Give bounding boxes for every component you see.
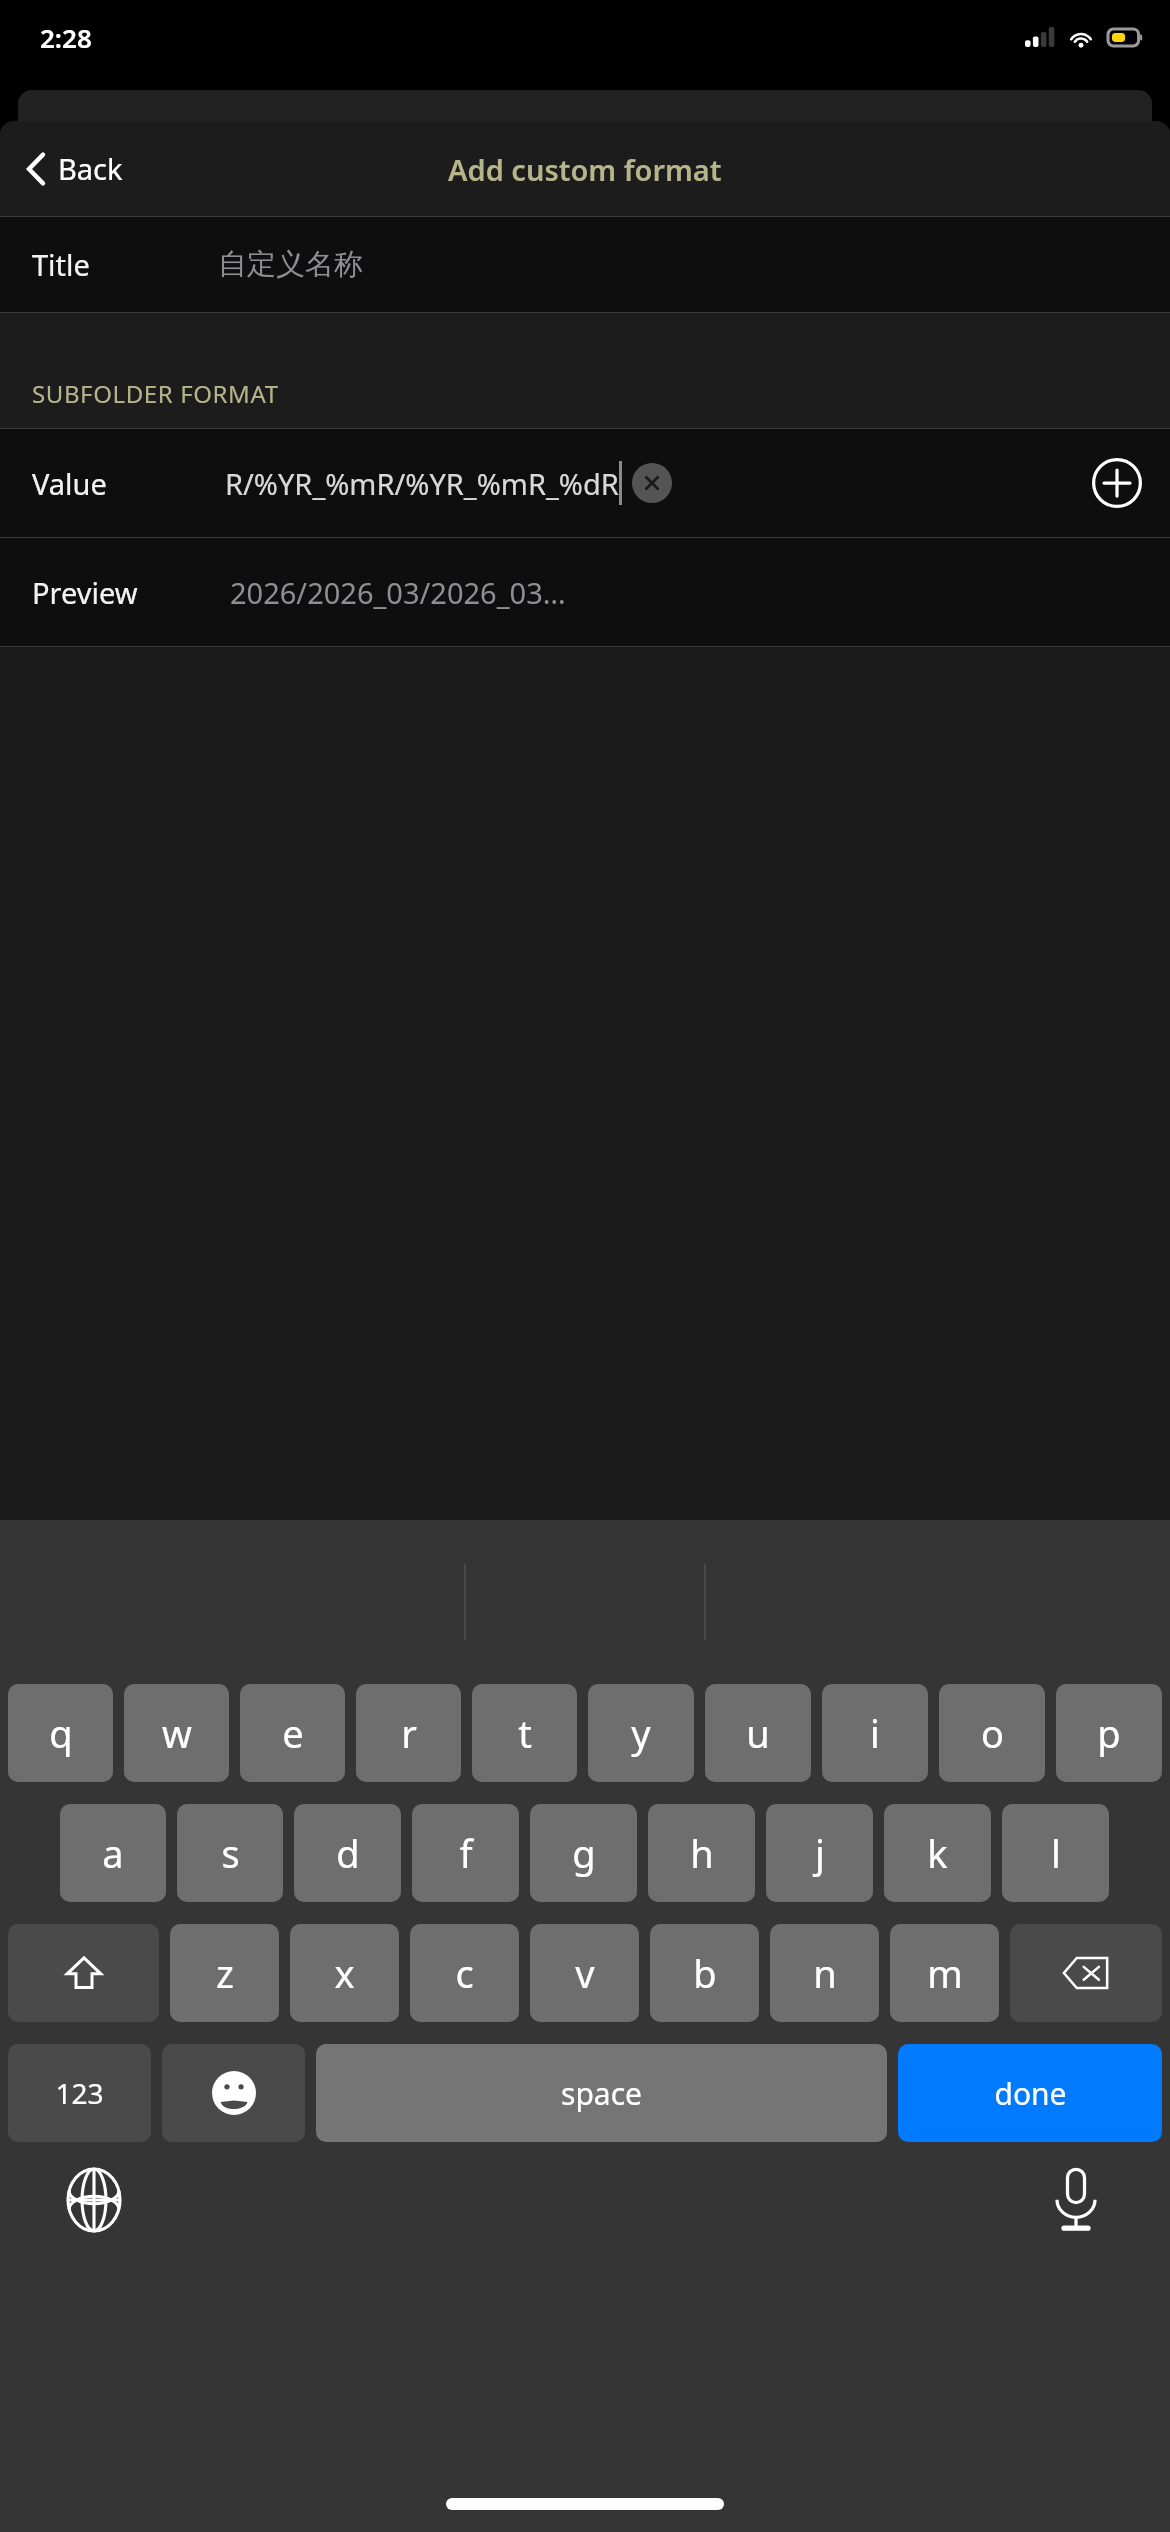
staticText: t <box>518 1707 532 1759</box>
staticText: d <box>336 1827 360 1879</box>
button[interactable]: y <box>588 1684 694 1782</box>
staticText: s <box>221 1827 240 1879</box>
staticText: r <box>401 1707 417 1759</box>
button[interactable]: t <box>472 1684 577 1782</box>
staticText: u <box>746 1707 770 1759</box>
button[interactable]: d <box>294 1804 401 1902</box>
button[interactable]: s <box>177 1804 283 1902</box>
button[interactable]: z <box>170 1924 279 2022</box>
button[interactable]: Shift <box>8 1924 159 2022</box>
staticText: c <box>455 1947 474 1999</box>
staticText: a <box>102 1827 124 1879</box>
button[interactable]: space <box>316 2044 887 2142</box>
staticText: R/%YR_%mR/%YR_%mR_%dR <box>225 464 619 503</box>
button[interactable]: u <box>705 1684 811 1782</box>
staticText: g <box>572 1827 596 1879</box>
staticText: SUBFOLDER FORMAT <box>32 377 279 410</box>
button[interactable]: Add format token <box>1088 454 1146 512</box>
button[interactable]: Clear text <box>632 463 672 503</box>
staticText: Back <box>58 149 123 188</box>
staticText: o <box>981 1707 1004 1759</box>
button[interactable]: f <box>412 1804 519 1902</box>
staticText: space <box>561 2073 642 2114</box>
button[interactable]: Preview <box>0 538 1170 646</box>
staticText: 123 <box>55 2074 104 2112</box>
staticText: Value <box>32 464 107 503</box>
staticText: p <box>1097 1707 1121 1759</box>
staticText: Title <box>32 245 90 284</box>
staticText: v <box>575 1947 595 1999</box>
button[interactable]: p <box>1056 1684 1162 1782</box>
staticText: b <box>693 1947 717 1999</box>
button[interactable]: g <box>530 1804 637 1902</box>
button[interactable]: v <box>530 1924 639 2022</box>
staticText: 自定义名称 <box>218 246 363 283</box>
button[interactable]: k <box>884 1804 991 1902</box>
staticText: m <box>927 1947 963 1999</box>
button[interactable]: q <box>8 1684 113 1782</box>
staticText: x <box>334 1947 355 1999</box>
button[interactable]: m <box>890 1924 999 2022</box>
staticText: n <box>813 1947 837 1999</box>
button[interactable]: o <box>939 1684 1045 1782</box>
button[interactable]: b <box>650 1924 759 2022</box>
button[interactable]: r <box>356 1684 461 1782</box>
staticText: f <box>459 1827 473 1879</box>
staticText: w <box>162 1707 192 1759</box>
staticText: i <box>870 1707 880 1759</box>
button[interactable]: Back <box>18 139 131 198</box>
staticText: y <box>631 1707 651 1759</box>
button[interactable]: j <box>766 1804 873 1902</box>
button[interactable]: Next keyboard <box>58 2164 130 2236</box>
staticText: q <box>49 1707 73 1759</box>
staticText: k <box>927 1827 948 1879</box>
staticText: Preview <box>32 573 138 612</box>
button[interactable]: Title <box>0 217 1170 312</box>
button[interactable]: i <box>822 1684 928 1782</box>
button[interactable]: a <box>60 1804 166 1902</box>
button[interactable]: 123 <box>8 2044 151 2142</box>
button[interactable]: n <box>770 1924 879 2022</box>
button[interactable]: e <box>240 1684 345 1782</box>
button[interactable]: Backspace <box>1010 1924 1162 2022</box>
staticText: e <box>282 1707 304 1759</box>
staticText: l <box>1051 1827 1061 1879</box>
staticText: 2:28 <box>40 20 92 55</box>
button[interactable]: Dictation <box>1040 2164 1112 2236</box>
staticText: j <box>815 1827 825 1879</box>
staticText: done <box>994 2073 1067 2114</box>
button[interactable]: Emoji <box>162 2044 305 2142</box>
staticText: Add custom format <box>448 150 722 189</box>
staticText: 2026/2026_03/2026_03… <box>230 573 566 612</box>
staticText: h <box>690 1827 714 1879</box>
button[interactable]: done <box>898 2044 1162 2142</box>
button[interactable]: l <box>1002 1804 1109 1902</box>
button[interactable]: w <box>124 1684 229 1782</box>
button[interactable]: h <box>648 1804 755 1902</box>
staticText: z <box>216 1947 234 1999</box>
button[interactable]: c <box>410 1924 519 2022</box>
button[interactable]: x <box>290 1924 399 2022</box>
